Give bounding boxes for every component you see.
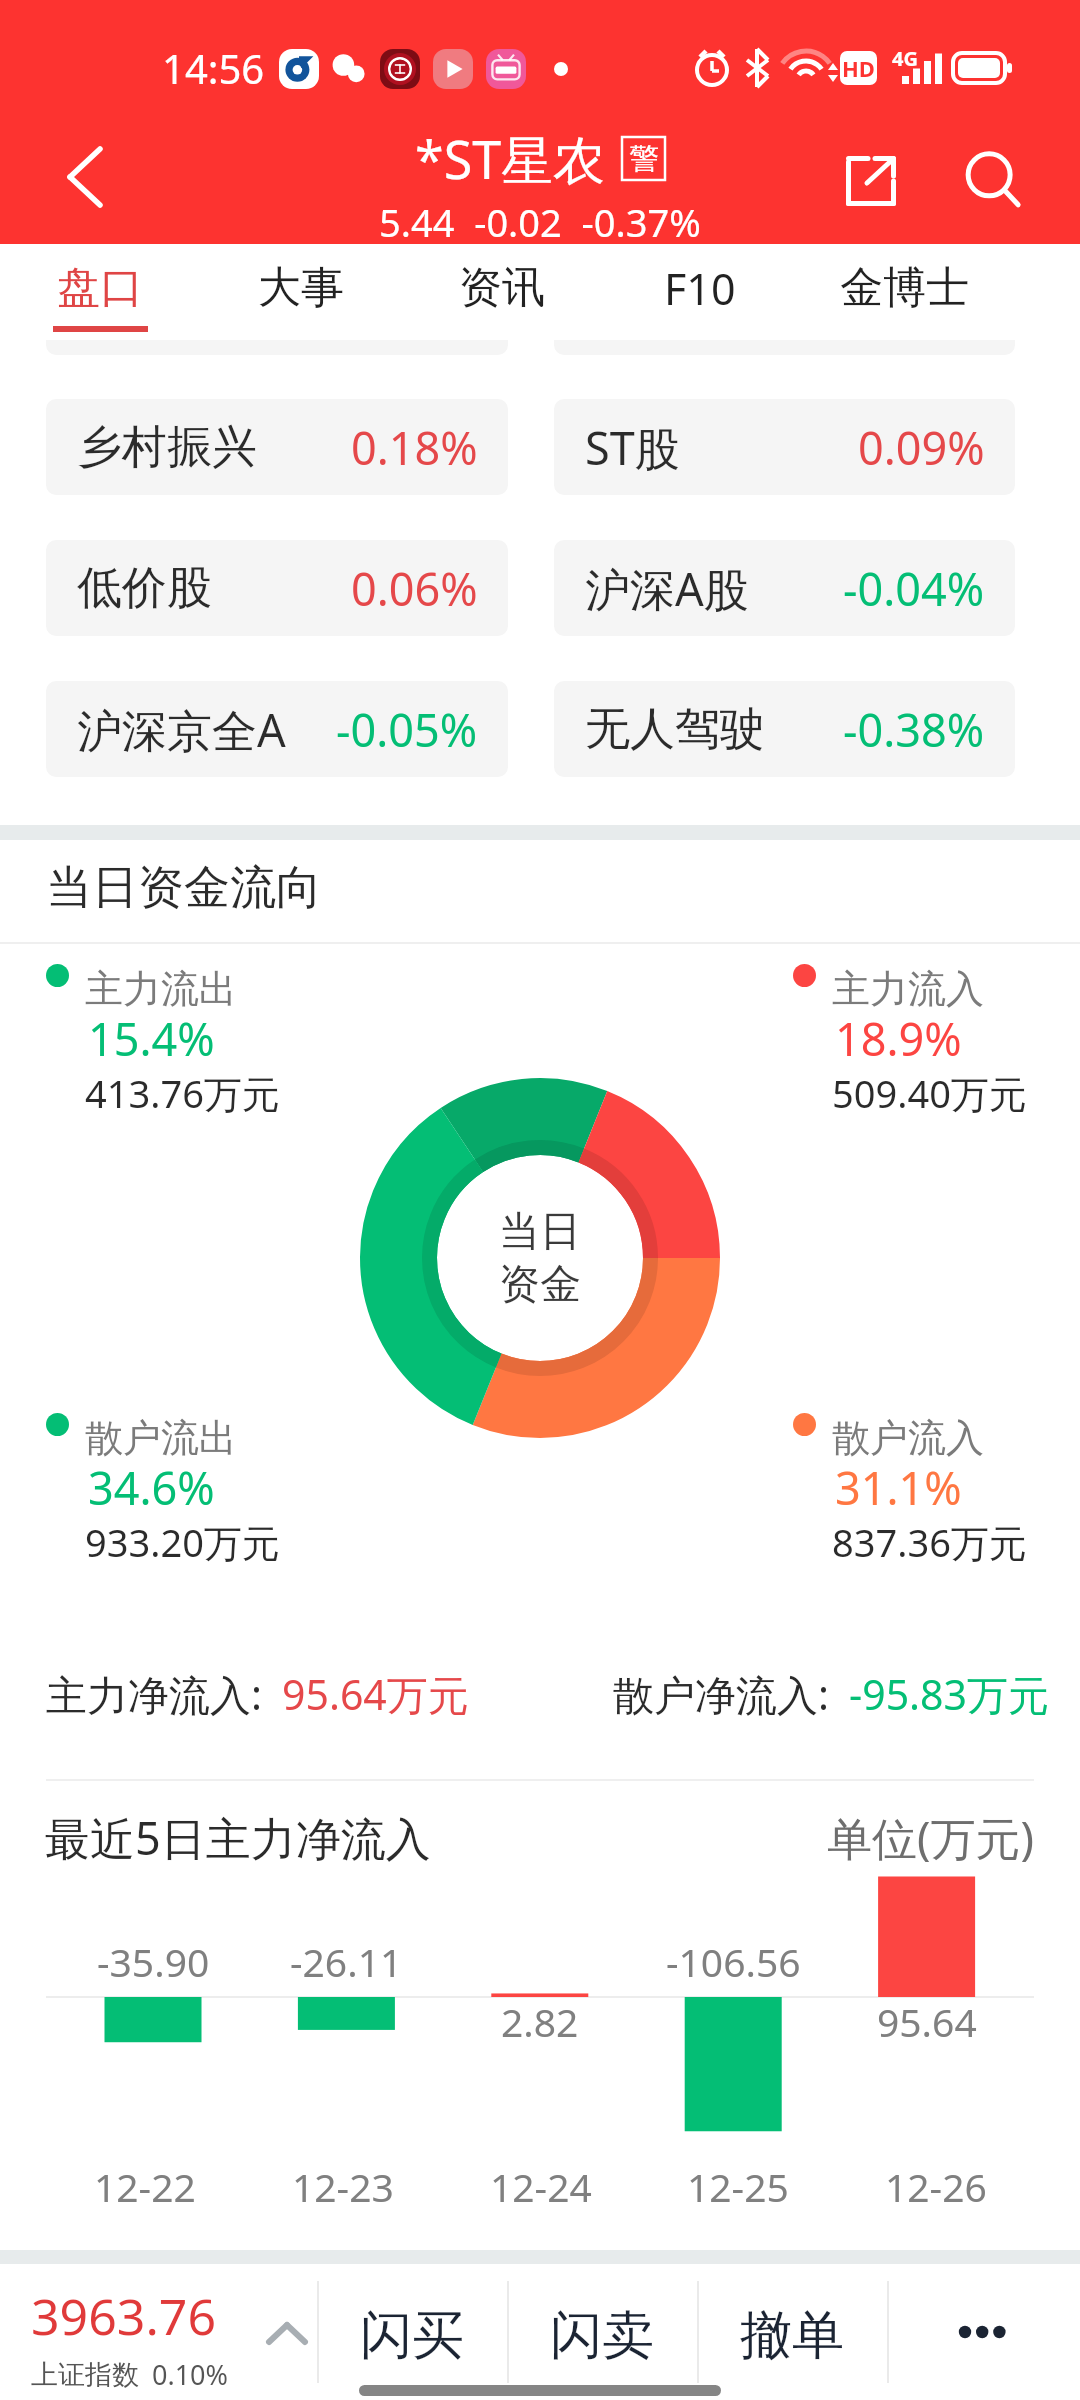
staticText: 散户流入 (832, 1414, 984, 1462)
staticText: 0.06% (351, 558, 478, 619)
staticText: 散户流出 (85, 1414, 237, 1462)
staticText: 沪深京全A (77, 699, 286, 760)
staticText: -0.38% (843, 699, 985, 760)
staticText: 大事 (258, 261, 344, 315)
staticText: 4G (892, 45, 918, 69)
staticText: 34.6% (88, 1457, 215, 1517)
button[interactable]: More (887, 2281, 1080, 2383)
button[interactable]: 沪深A股 (554, 540, 1015, 636)
button[interactable]: ST股 (554, 399, 1015, 495)
staticText: 12-22 (94, 2160, 196, 2213)
button[interactable]: Expand (237, 2284, 337, 2384)
staticText: 最近5日主力净流入 (45, 1807, 431, 1867)
button[interactable]: F10 (600, 244, 800, 340)
staticText: 主力流入 (832, 965, 984, 1013)
staticText: 闪卖 (550, 2303, 654, 2369)
button[interactable]: Share (816, 118, 926, 244)
staticText: 金博士 (840, 261, 969, 315)
button[interactable]: 乡村振兴 (46, 399, 508, 495)
button[interactable]: Search (936, 118, 1046, 244)
staticText: 12-26 (885, 2160, 987, 2213)
staticText: *ST星农 (415, 123, 606, 194)
button[interactable]: 闪买 (317, 2285, 507, 2387)
staticText: 沪深A股 (585, 558, 749, 619)
button[interactable]: 盘口 (0, 244, 200, 340)
staticText: 资金 (499, 1259, 581, 1311)
staticText: -95.83万元 (849, 1666, 1049, 1722)
staticText: -35.90 (97, 1935, 210, 1988)
staticText: 12-24 (490, 2160, 592, 2213)
button[interactable]: 沪深京全A (46, 681, 508, 777)
staticText: 闪买 (360, 2303, 464, 2369)
staticText: 95.64 (877, 1995, 977, 2048)
staticText: 当日资金流向 (46, 859, 322, 917)
staticText: 933.20万元 (85, 1516, 280, 1568)
staticText: ST股 (585, 417, 680, 478)
staticText: 乡村振兴 (77, 419, 257, 476)
staticText: 警 (629, 140, 659, 178)
staticText: 31.1% (835, 1457, 962, 1517)
button[interactable]: Back (20, 118, 160, 244)
staticText: 低价股 (77, 560, 212, 617)
button[interactable]: 大事 (201, 244, 401, 340)
staticText: 主力流出 (85, 965, 237, 1013)
staticText: 撤单 (740, 2303, 844, 2369)
button[interactable]: 金博士 (804, 244, 1004, 340)
staticText: 3963.76 (31, 2282, 216, 2350)
staticText: F10 (664, 259, 736, 318)
staticText: 当日 (499, 1206, 581, 1258)
staticText: -26.11 (290, 1935, 403, 1988)
button[interactable]: 撤单 (697, 2285, 887, 2387)
staticText: 盘口 (57, 261, 143, 315)
staticText: -106.56 (666, 1935, 801, 1988)
staticText: 2.82 (501, 1995, 579, 2048)
staticText: 单位(万元) (827, 1807, 1035, 1867)
staticText: 509.40万元 (832, 1067, 1027, 1119)
staticText: 上证指数 (31, 2358, 139, 2392)
staticText: 5.44 -0.02 -0.37% (379, 196, 701, 248)
staticText: 95.64万元 (282, 1666, 469, 1722)
staticText: 15.4% (88, 1008, 215, 1068)
staticText: 12-23 (292, 2160, 394, 2213)
staticText: -0.04% (843, 558, 985, 619)
staticText: 837.36万元 (832, 1516, 1027, 1568)
button[interactable]: 无人驾驶 (554, 681, 1015, 777)
staticText: 0.09% (858, 417, 985, 478)
staticText: 0.18% (351, 417, 478, 478)
staticText: 无人驾驶 (585, 701, 765, 758)
staticText: 资讯 (459, 261, 545, 315)
button[interactable]: 资讯 (402, 244, 602, 340)
button[interactable]: 低价股 (46, 540, 508, 636)
staticText: 413.76万元 (85, 1067, 280, 1119)
staticText: 14:56 (162, 41, 265, 95)
staticText: -0.05% (336, 699, 478, 760)
button[interactable]: 闪卖 (507, 2285, 697, 2387)
button[interactable]: 3963.76 (31, 2282, 229, 2393)
staticText: 18.9% (835, 1008, 962, 1068)
staticText: 散户净流入: (613, 1666, 829, 1722)
staticText: 12-25 (687, 2160, 789, 2213)
staticText: HD (842, 53, 875, 83)
staticText: 0.10% (152, 2356, 229, 2393)
staticText: 主力净流入: (46, 1666, 262, 1722)
